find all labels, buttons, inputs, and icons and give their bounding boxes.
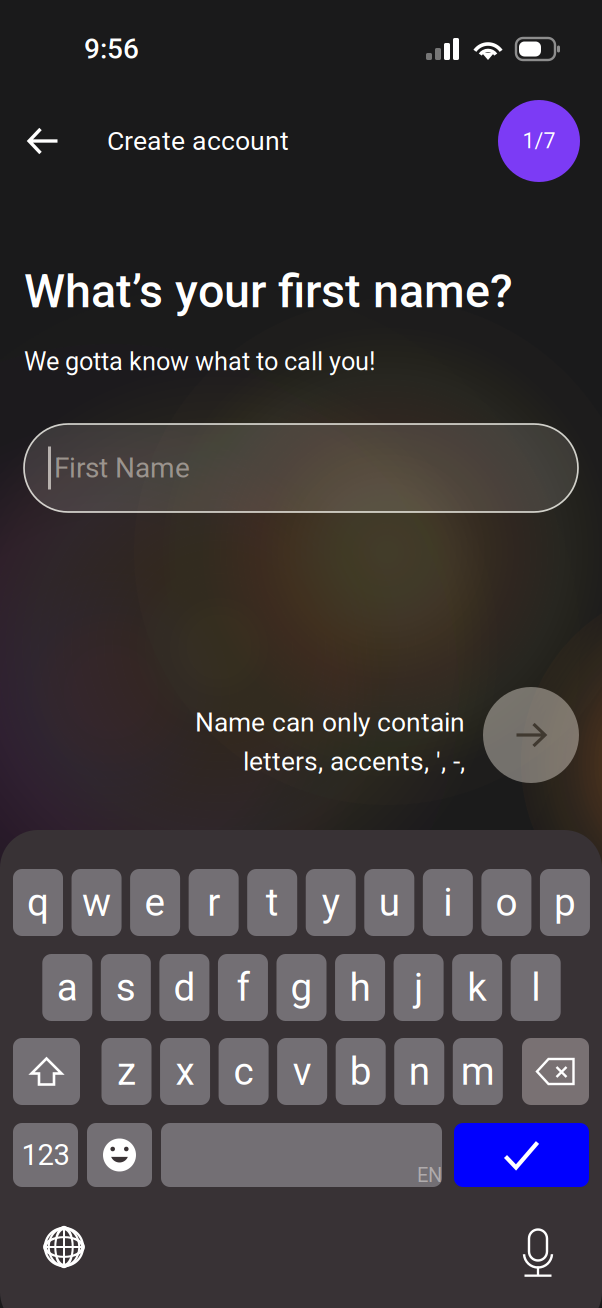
staticText: k [467,965,487,1010]
staticText: a [57,965,78,1010]
staticText: t [266,880,279,925]
button[interactable]: u [364,869,414,936]
staticText: r [207,880,220,925]
staticText: l [531,965,540,1010]
button[interactable]: Change keyboard [32,1215,96,1279]
staticText: o [495,880,517,925]
button[interactable]: Emoji [87,1123,152,1187]
button[interactable]: Space [161,1123,442,1187]
staticText: 1/7 [522,128,555,153]
staticText: h [350,965,371,1010]
button[interactable]: 1/7 [498,100,580,182]
button[interactable]: n [394,1038,444,1105]
button[interactable]: o [481,869,531,936]
staticText: EN [417,1164,442,1187]
staticText: s [116,965,136,1010]
staticText: w [82,880,111,925]
button[interactable]: e [130,869,180,936]
staticText: j [414,965,423,1010]
staticText: First Name [54,452,190,484]
staticText: q [27,880,49,925]
staticText: g [290,965,312,1010]
button[interactable]: k [452,954,502,1021]
button[interactable]: First Name [24,424,578,512]
button[interactable]: Continue [483,687,579,783]
staticText: Create account [107,125,289,157]
button[interactable]: Back [12,110,74,172]
button[interactable]: g [276,954,326,1021]
staticText: u [379,880,400,925]
button[interactable]: z [101,1038,151,1105]
button[interactable]: Shift [13,1038,80,1105]
button[interactable]: Dictation [506,1212,570,1276]
button[interactable]: i [423,869,473,936]
staticText: c [234,1049,254,1094]
staticText: f [236,965,249,1010]
button[interactable]: b [336,1038,386,1105]
staticText: What’s your first name? [24,264,513,319]
button[interactable]: r [189,869,239,936]
staticText: We gotta know what to call you! [24,347,376,376]
staticText: x [176,1049,195,1094]
button[interactable]: v [277,1038,327,1105]
button[interactable]: 123 [13,1123,78,1187]
staticText: 123 [21,1138,69,1172]
staticText: Name can only contain [195,707,465,738]
button[interactable]: Confirm [454,1123,589,1187]
staticText: y [322,880,340,925]
button[interactable]: j [394,954,444,1021]
staticText: v [293,1049,312,1094]
staticText: 9:56 [84,33,139,65]
button[interactable]: Delete [522,1038,589,1105]
button[interactable]: t [247,869,297,936]
button[interactable]: p [540,869,590,936]
button[interactable]: q [13,869,63,936]
staticText: i [443,880,452,925]
button[interactable]: a [42,954,92,1021]
button[interactable]: w [71,869,121,936]
staticText: m [461,1049,495,1094]
button[interactable]: m [453,1038,503,1105]
button[interactable]: c [219,1038,269,1105]
staticText: p [554,880,576,925]
staticText: letters, accents, ', -, [243,746,465,777]
staticText: n [409,1049,430,1094]
button[interactable]: f [218,954,268,1021]
staticText: b [350,1049,372,1094]
button[interactable]: l [511,954,561,1021]
button[interactable]: s [101,954,151,1021]
staticText: z [117,1049,136,1094]
staticText: d [173,965,195,1010]
staticText: e [145,880,166,925]
button[interactable]: y [306,869,356,936]
button[interactable]: x [160,1038,210,1105]
button[interactable]: h [335,954,385,1021]
button[interactable]: d [159,954,209,1021]
